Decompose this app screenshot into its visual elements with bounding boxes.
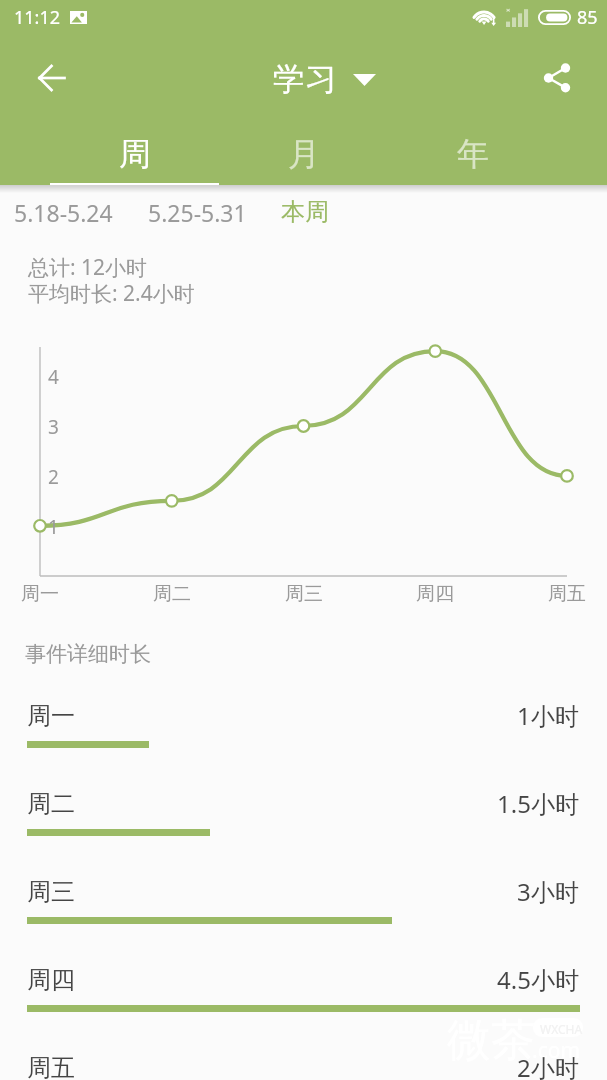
staticText: 周四	[27, 965, 75, 995]
button[interactable]: 周二	[0, 787, 607, 875]
staticText: 年	[457, 134, 489, 174]
staticText: 周三	[27, 877, 75, 907]
staticText: .com	[532, 1036, 581, 1065]
staticText: 周	[119, 134, 151, 174]
staticText: 周一	[9, 582, 71, 606]
staticText: 周五	[27, 1053, 75, 1080]
staticText: 平均时长: 2.4小时	[28, 279, 195, 308]
staticText: 微茶	[447, 1013, 535, 1068]
button[interactable]: 周四	[0, 963, 607, 1051]
staticText: 事件详细时长	[25, 641, 151, 667]
staticText: 2	[48, 464, 59, 490]
staticText: 2小时	[517, 1051, 579, 1080]
staticText: 1.5小时	[497, 787, 579, 820]
staticText: 周二	[141, 582, 203, 606]
staticText: 周五	[536, 582, 598, 606]
button[interactable]: 5.25-5.31	[148, 197, 247, 227]
button[interactable]: 月	[219, 119, 388, 185]
staticText: 学习	[273, 59, 337, 99]
button[interactable]: 本周	[281, 197, 329, 227]
button[interactable]: 周三	[0, 875, 607, 963]
staticText: 1	[48, 514, 59, 540]
staticText: 周二	[27, 789, 75, 819]
staticText: 5.25-5.31	[148, 197, 247, 227]
button[interactable]: Back	[29, 53, 75, 99]
staticText: 5.18-5.24	[14, 197, 113, 227]
staticText: 周三	[273, 582, 335, 606]
staticText: 4	[48, 364, 59, 390]
button[interactable]: 学习	[273, 59, 376, 99]
staticText: 3	[48, 414, 59, 440]
button[interactable]: 5.18-5.24	[14, 197, 113, 227]
staticText: WXCHA	[540, 1021, 583, 1037]
staticText: 1小时	[517, 699, 579, 732]
staticText: 周四	[404, 582, 466, 606]
staticText: 3小时	[517, 875, 579, 908]
staticText: 11:12	[14, 5, 61, 30]
staticText: 周一	[27, 701, 75, 731]
staticText: 本周	[281, 197, 329, 227]
button[interactable]: 周一	[0, 699, 607, 787]
button[interactable]: 周	[50, 119, 219, 185]
staticText: 总计: 12小时	[28, 253, 148, 282]
staticText: 4.5小时	[497, 963, 579, 996]
staticText: 月	[288, 134, 320, 174]
staticText: 85	[577, 5, 598, 30]
button[interactable]: 周五	[0, 1051, 607, 1080]
button[interactable]: Share	[535, 54, 579, 98]
button[interactable]: 年	[388, 119, 557, 185]
